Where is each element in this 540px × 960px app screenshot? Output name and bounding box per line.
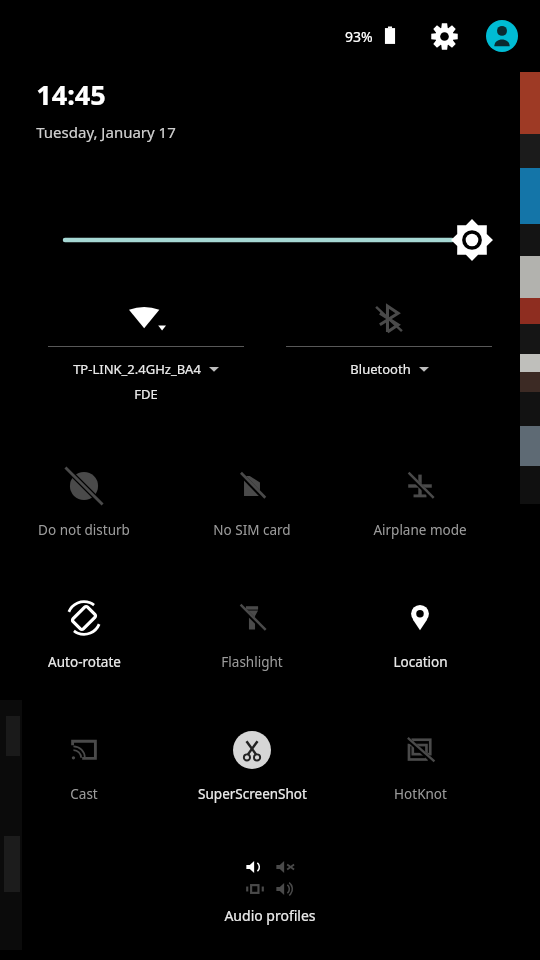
staticText: HotKnot [394,785,447,803]
button[interactable]: Settings [424,16,464,56]
staticText: Cast [70,785,98,803]
button[interactable]: Auto-rotate [0,594,168,671]
button[interactable]: No SIM card [168,462,336,539]
button[interactable]: Location [336,594,504,671]
staticText: TP-LINK_2.4GHz_BA4 [73,360,201,378]
button[interactable]: User account [482,16,522,56]
staticText: Location [393,653,448,671]
staticText: Airplane mode [373,521,467,539]
button[interactable]: Audio profiles [196,856,344,925]
staticText: Auto-rotate [48,653,121,671]
staticText: SuperScreenShot [198,785,307,803]
staticText: 93% [345,27,373,46]
button[interactable]: Cast [0,726,168,803]
staticText: 14:45 [36,76,106,113]
staticText: FDE [134,385,158,403]
button[interactable]: Bluetooth [286,292,492,378]
staticText: Flashlight [221,653,283,671]
button[interactable]: Flashlight [168,594,336,671]
button[interactable]: SuperScreenShot [168,726,336,803]
staticText: Bluetooth [350,360,411,378]
button[interactable]: TP-LINK_2.4GHz_BA4 [22,292,270,403]
button[interactable]: Battery 93 percent [378,24,402,48]
button[interactable]: Do not disturb [0,462,168,539]
staticText: Do not disturb [38,521,130,539]
button[interactable]: Airplane mode [336,462,504,539]
button[interactable]: HotKnot [336,726,504,803]
staticText: No SIM card [213,521,291,539]
staticText: Tuesday, January 17 [36,122,176,142]
button[interactable]: Brightness [48,214,492,266]
staticText: Audio profiles [224,906,316,925]
